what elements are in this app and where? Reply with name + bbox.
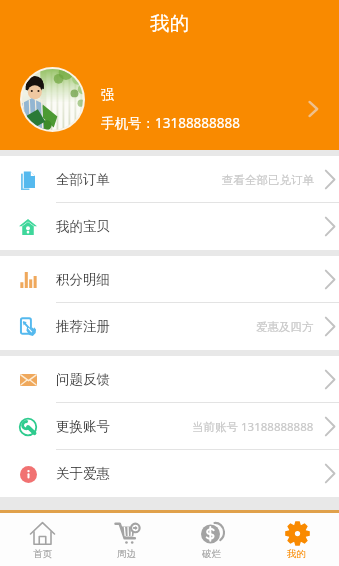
staticText: 爱惠及四方 (256, 320, 314, 334)
button[interactable]: 周边 (84, 513, 169, 566)
staticText: 积分明细 (56, 271, 110, 288)
staticText: 周边 (117, 548, 136, 560)
staticText: 我的 (287, 548, 306, 560)
staticText: 当前账号 13188888888 (192, 419, 314, 435)
staticText: 全部订单 (56, 171, 110, 188)
button[interactable]: 我的宝贝 (0, 203, 339, 250)
staticText: 关于爱惠 (56, 465, 110, 482)
staticText: 更换账号 (56, 418, 110, 435)
staticText: 首页 (33, 548, 52, 560)
staticText: 查看全部已兑订单 (222, 173, 314, 187)
staticText: 破烂 (202, 548, 221, 560)
button[interactable]: 强 (0, 66, 339, 132)
button[interactable]: 问题反馈 (0, 356, 339, 403)
staticText: 推荐注册 (56, 318, 110, 335)
button[interactable]: 推荐注册 (0, 303, 339, 350)
staticText: 强 (101, 86, 115, 103)
staticText: 我的 (150, 11, 189, 36)
button[interactable]: 全部订单 (0, 156, 339, 203)
staticText: 问题反馈 (56, 371, 110, 388)
button[interactable]: 首页 (0, 513, 84, 566)
button[interactable]: 积分明细 (0, 256, 339, 303)
button[interactable]: 更换账号 (0, 403, 339, 450)
staticText: 手机号：13188888888 (101, 114, 240, 132)
staticText: 我的宝贝 (56, 218, 110, 235)
other: 个人资料 (308, 101, 318, 117)
button[interactable]: 我的 (254, 513, 339, 566)
button[interactable]: 破烂 (169, 513, 254, 566)
button[interactable]: 关于爱惠 (0, 450, 339, 497)
